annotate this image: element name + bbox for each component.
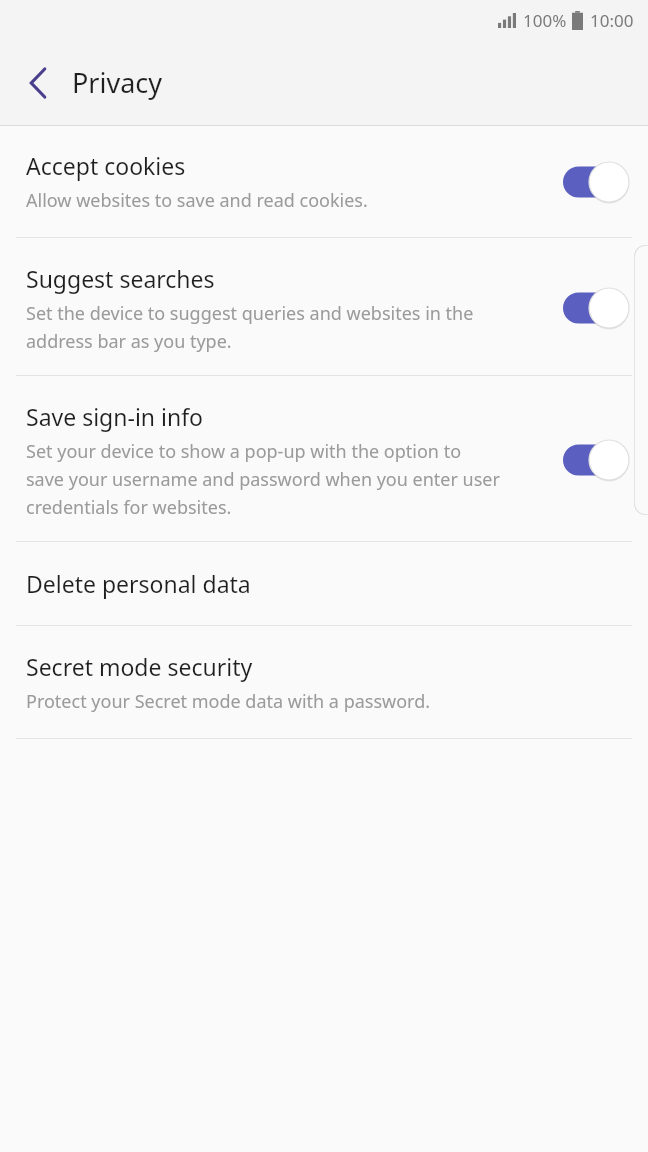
staticText: 10:00 [590, 9, 634, 32]
staticText: Accept cookies [26, 150, 186, 181]
staticText: 100% [523, 9, 567, 32]
button[interactable]: Accept cookies [0, 126, 648, 237]
button[interactable]: Secret mode security [0, 626, 648, 738]
button[interactable]: Toggle [560, 285, 632, 331]
staticText: Suggest searches [26, 263, 215, 294]
button[interactable]: Toggle [560, 159, 632, 205]
staticText: Allow websites to save and read cookies. [26, 188, 368, 213]
staticText: Save sign-in info [26, 401, 203, 432]
button[interactable]: Toggle [560, 437, 632, 483]
staticText: Set your device to show a pop-up with th… [26, 439, 500, 519]
staticText: Privacy [72, 64, 163, 101]
staticText: Delete personal data [26, 568, 251, 599]
button[interactable]: Suggest searches [0, 238, 648, 375]
staticText: Set the device to suggest queries and we… [26, 301, 474, 353]
button[interactable]: Save sign-in info [0, 376, 648, 541]
staticText: Protect your Secret mode data with a pas… [26, 689, 431, 714]
button[interactable]: Back [10, 55, 66, 111]
button[interactable]: Delete personal data [0, 542, 648, 625]
staticText: Secret mode security [26, 651, 253, 682]
